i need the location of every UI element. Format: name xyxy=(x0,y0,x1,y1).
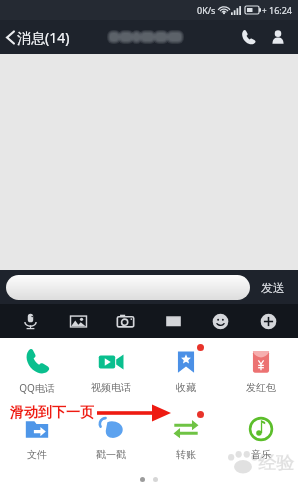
staticText: QQ电话 xyxy=(19,381,55,395)
button[interactable]: Contact profile xyxy=(263,20,293,54)
staticText: 文件 xyxy=(27,448,47,461)
staticText: 转账 xyxy=(176,448,196,461)
button[interactable]: 文件 xyxy=(0,413,74,461)
button[interactable]: More options xyxy=(249,305,287,337)
button[interactable]: 视频电话 xyxy=(74,346,148,394)
staticText: 发送 xyxy=(261,280,285,295)
button[interactable]: Voice call xyxy=(233,20,263,54)
button[interactable]: 消息(14) xyxy=(0,20,78,54)
staticText: 收藏 xyxy=(176,381,196,394)
button[interactable]: Camera xyxy=(106,305,144,337)
staticText: 音乐 xyxy=(251,448,271,461)
button[interactable]: 戳一戳 xyxy=(74,413,148,461)
button[interactable]: Red packet xyxy=(154,305,192,337)
staticText: 经验 xyxy=(258,452,294,475)
button[interactable]: 发红包 xyxy=(223,346,298,394)
staticText: 消息(14) xyxy=(17,28,70,47)
button[interactable]: 发送 xyxy=(250,270,296,304)
button[interactable]: 转账 xyxy=(148,413,223,461)
button[interactable]: 收藏 xyxy=(148,346,223,394)
staticText: 发红包 xyxy=(246,381,276,394)
staticText: 0K/s xyxy=(197,4,216,16)
staticText: 滑动到下一页 xyxy=(10,404,94,422)
staticText: 视频电话 xyxy=(91,381,131,394)
staticText: + xyxy=(262,5,267,16)
button[interactable]: Voice message xyxy=(11,305,49,337)
button[interactable]: Emoji xyxy=(201,305,239,337)
staticText: 16:24 xyxy=(269,4,293,16)
button[interactable] xyxy=(6,275,250,300)
button[interactable]: Photo album xyxy=(59,305,97,337)
button[interactable]: 音乐 xyxy=(223,413,298,461)
staticText: 戳一戳 xyxy=(96,448,126,461)
button[interactable]: QQ电话 xyxy=(0,346,74,395)
